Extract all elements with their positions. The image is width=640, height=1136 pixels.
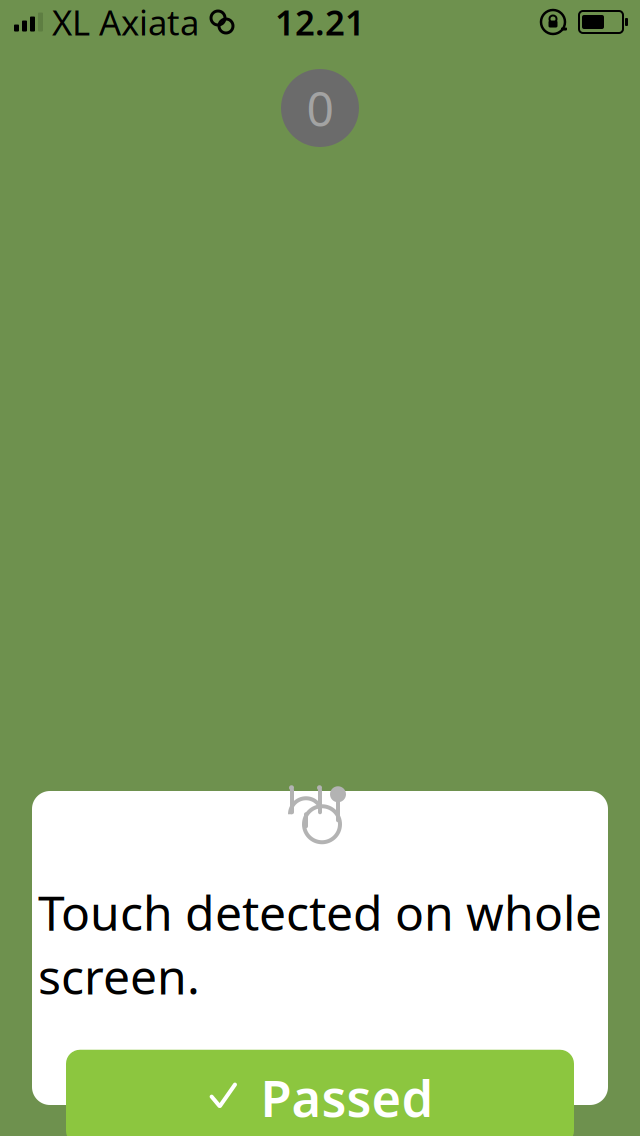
- staticText: XL Axiata: [52, 0, 199, 45]
- staticText: 0: [306, 76, 333, 140]
- staticText: Passed: [260, 1064, 433, 1131]
- staticText: 12.21: [275, 0, 365, 45]
- staticText: Touch detected on whole screen.: [38, 880, 602, 1008]
- button[interactable]: Passed: [66, 1050, 574, 1136]
